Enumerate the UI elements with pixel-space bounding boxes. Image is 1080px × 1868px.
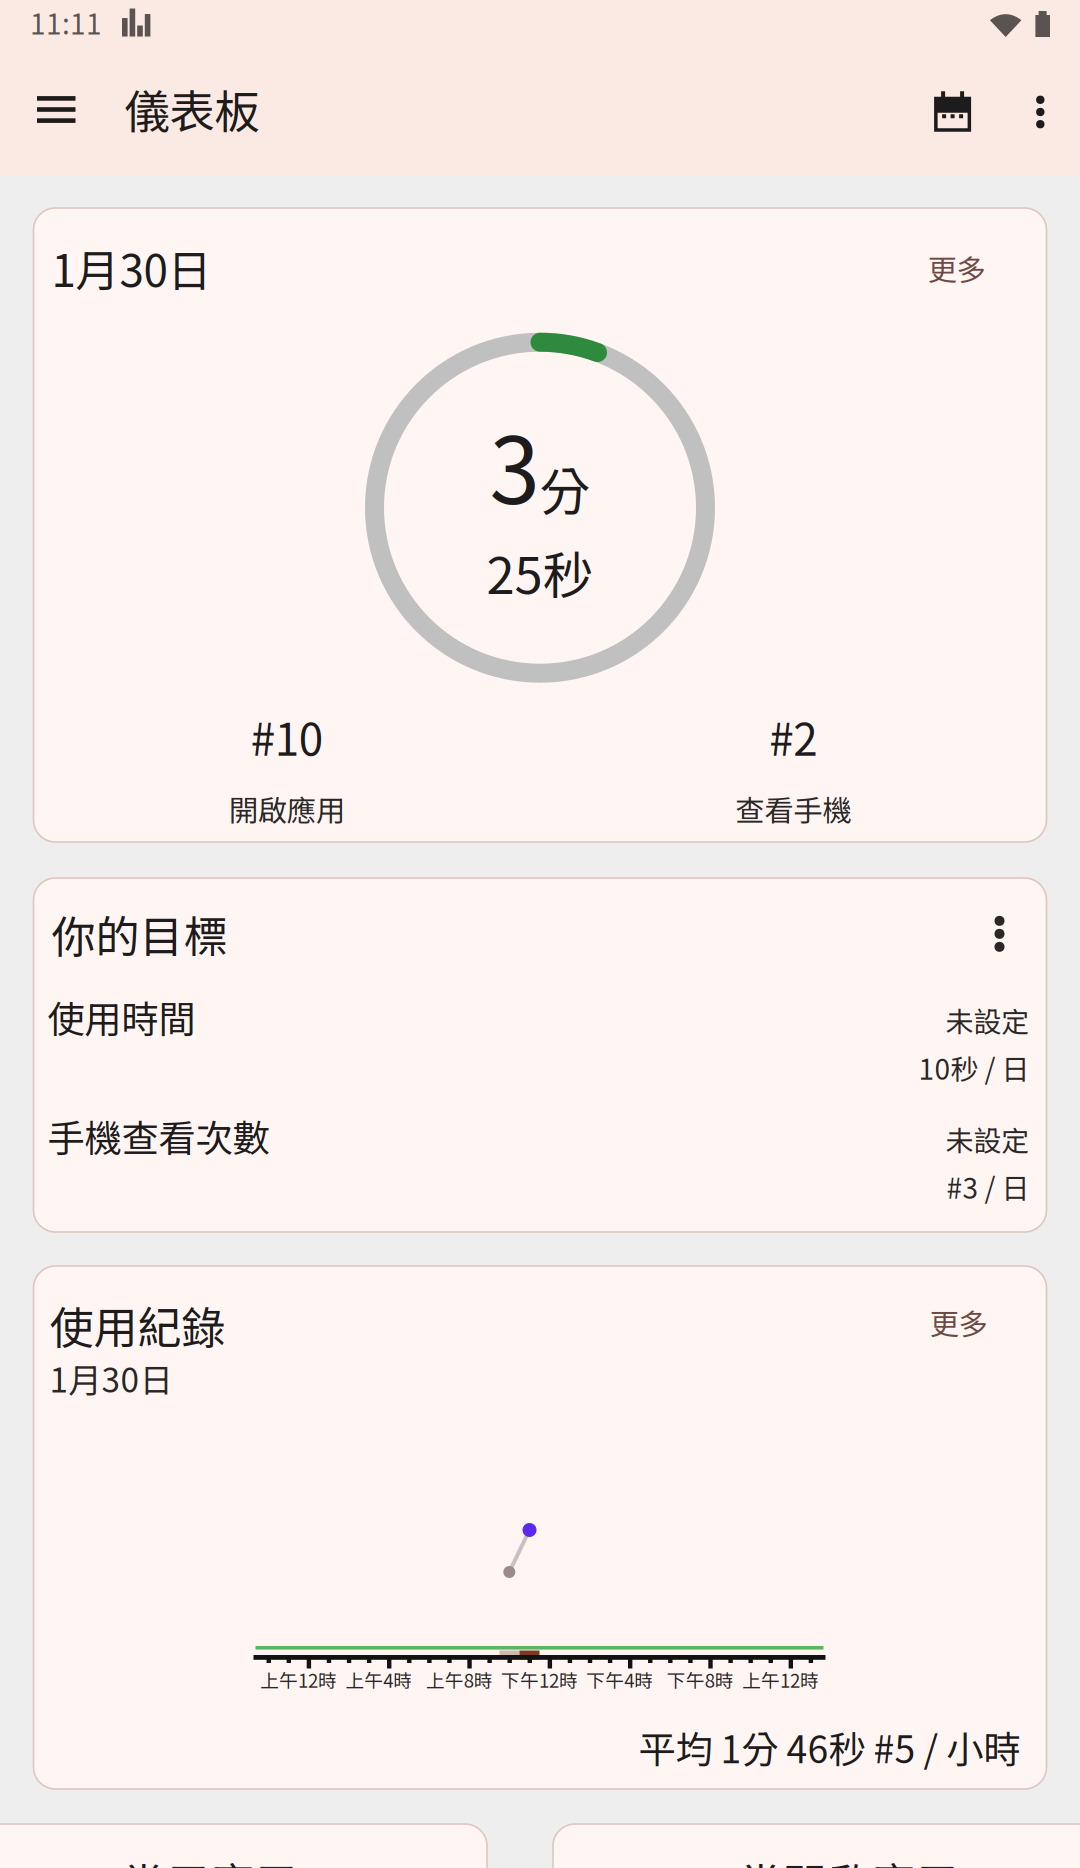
staticText: 下午8時 xyxy=(667,1666,734,1693)
staticText: #3 / 日 xyxy=(946,1166,1029,1207)
button[interactable]: 常用應用 xyxy=(0,1824,487,1868)
staticText: 更多 xyxy=(929,1301,987,1343)
staticText: 常開啟應用 xyxy=(738,1850,958,1868)
staticText: 手機查看次數 xyxy=(47,1109,269,1163)
staticText: 常用應用 xyxy=(121,1850,297,1868)
staticText: 25秒 xyxy=(486,535,593,609)
staticText: 1月30日 xyxy=(49,1354,172,1402)
button[interactable]: Navigation menu xyxy=(0,66,111,169)
staticText: #10 xyxy=(251,705,323,768)
staticText: 未設定 xyxy=(945,1119,1029,1159)
staticText: 更多 xyxy=(927,247,985,289)
staticText: 查看手機 xyxy=(735,787,851,830)
staticText: 未設定 xyxy=(945,1000,1029,1040)
staticText: 使用紀錄 xyxy=(49,1293,225,1357)
staticText: 下午12時 xyxy=(501,1666,578,1693)
button[interactable]: 更多 xyxy=(919,1293,997,1351)
staticText: 儀表板 xyxy=(124,76,259,141)
button[interactable]: 更多 xyxy=(917,239,995,297)
button[interactable]: More options xyxy=(1010,65,1080,170)
staticText: 上午12時 xyxy=(742,1666,819,1693)
staticText: 下午4時 xyxy=(586,1666,653,1693)
staticText: 使用時間 xyxy=(47,990,195,1044)
staticText: 平均 1分 46秒 #5 / 小時 xyxy=(638,1720,1020,1774)
staticText: 3 xyxy=(489,399,539,530)
staticText: 上午4時 xyxy=(345,1666,412,1693)
staticText: 開啟應用 xyxy=(229,787,345,830)
button[interactable]: 手機查看次數 xyxy=(33,1085,1046,1204)
button[interactable]: Goal options xyxy=(982,906,1016,962)
button[interactable]: 常開啟應用 xyxy=(553,1824,1080,1868)
staticText: 1月30日 xyxy=(51,236,211,300)
staticText: #2 xyxy=(769,705,817,768)
button[interactable]: 使用時間 xyxy=(33,966,1046,1085)
button[interactable]: Pick a date xyxy=(915,65,1010,170)
staticText: 11:11 xyxy=(30,2,102,42)
staticText: 上午12時 xyxy=(260,1666,337,1693)
staticText: 10秒 / 日 xyxy=(918,1047,1029,1088)
staticText: 你的目標 xyxy=(51,902,227,966)
staticText: 上午8時 xyxy=(426,1666,493,1693)
staticText: 分 xyxy=(539,452,590,525)
